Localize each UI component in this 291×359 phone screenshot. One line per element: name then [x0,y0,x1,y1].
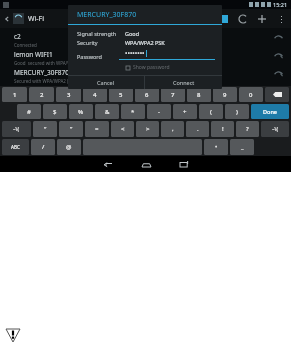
staticText: 2 [40,91,44,99]
button[interactable]: > [136,121,159,137]
button[interactable]: Add network [256,13,268,25]
staticText: ~\{ [272,126,279,132]
staticText: c2 [14,32,21,41]
button[interactable]: Back [0,13,49,24]
other: Back [4,16,10,22]
button[interactable]: * [121,104,145,119]
button[interactable]: c2 [0,31,291,49]
button[interactable]: 6 [135,87,159,102]
staticText: & [105,108,110,116]
staticText: ! [222,125,224,133]
button[interactable]: lemon WIFI1 [0,49,291,67]
staticText: 9 [223,91,227,99]
button[interactable]: % [69,104,93,119]
button[interactable]: 3 [56,87,81,102]
button[interactable]: 5 [109,87,133,102]
staticText: Secured with WPA/WPA2 (WPS...) [14,78,83,84]
button[interactable]: • [204,139,228,155]
staticText: Password [77,53,119,60]
button[interactable]: # [17,104,41,119]
staticText: 0 [249,91,253,99]
button[interactable]: Done [251,104,289,119]
button[interactable]: ( [199,104,223,119]
staticText: •••••••• [125,49,145,58]
staticText: 8 [197,91,201,99]
button[interactable]: ” [59,121,83,137]
button[interactable]: More options [275,13,287,25]
button[interactable]: ~\{ [261,121,289,137]
staticText: 4 [93,91,97,99]
staticText: 6 [145,91,149,99]
button[interactable]: @ [57,139,81,155]
button[interactable]: ? [236,121,259,137]
button[interactable]: Wi-Fi on [217,15,228,23]
staticText: 5 [119,91,123,99]
button[interactable]: 7 [161,87,185,102]
button[interactable]: 0 [239,87,263,102]
staticText: WPA/WPA2 PSK [125,39,165,46]
staticText: ” [70,125,73,133]
button[interactable]: $ [43,104,67,119]
button[interactable]: Cancel [68,76,144,89]
staticText: = [95,125,99,133]
button[interactable]: Recent apps [175,156,193,172]
button[interactable]: , [161,121,184,137]
staticText: ) [236,108,238,116]
staticText: lem [14,90,26,99]
staticText: 15:21 [273,1,288,8]
staticText: - [158,108,160,116]
staticText: 7 [171,91,175,99]
button[interactable]: ) [225,104,249,119]
button[interactable]: ~\{ [2,121,31,137]
button[interactable]: 9 [213,87,237,102]
button[interactable]: Show password [68,64,222,71]
staticText: Good [125,30,140,37]
button[interactable]: Scan [237,13,249,25]
staticText: Signal strength [77,30,125,37]
button[interactable]: < [111,121,134,137]
button[interactable]: Connect [145,76,222,89]
staticText: + [183,108,187,116]
staticText: / [42,143,45,151]
staticText: Show password [133,64,170,71]
button[interactable]: 8 [187,87,211,102]
staticText: Cancel [97,79,115,86]
button[interactable]: lem [0,85,291,103]
button[interactable]: MERCURY_30F870 [0,67,291,85]
button[interactable]: . [186,121,209,137]
button[interactable]: 2 [29,87,54,102]
button[interactable]: 4 [83,87,107,102]
staticText: _ [241,143,244,151]
staticText: Done [263,108,277,115]
button[interactable]: + [173,104,197,119]
button[interactable]: Home [137,156,155,172]
staticText: MERCURY_30F870 [14,68,69,77]
button[interactable]: Back [99,156,117,172]
staticText: ( [210,108,212,116]
staticText: ? [246,125,249,133]
button[interactable]: & [95,104,119,119]
staticText: @ [66,143,72,151]
button[interactable]: = [85,121,109,137]
staticText: $ [53,108,57,116]
button[interactable]: “ [33,121,57,137]
button[interactable]: 1 [2,87,27,102]
staticText: lemon WIFI1 [14,50,53,59]
button[interactable]: / [31,139,55,155]
button[interactable]: - [147,104,171,119]
staticText: Connect [173,79,195,86]
staticText: Good secured with WPA/WPA2 [14,60,80,66]
button[interactable]: ! [211,121,234,137]
staticText: 3 [67,91,71,99]
button[interactable]: _ [230,139,254,155]
staticText: Security [77,39,125,46]
button[interactable]: Backspace [265,87,289,102]
button[interactable]: ABC [2,139,29,155]
staticText: ~\{ [13,126,20,132]
staticText: < [121,125,125,133]
staticText: , [172,125,174,133]
staticText: Wi-Fi [28,14,45,24]
staticText: * [131,108,135,116]
staticText: . [197,125,199,133]
